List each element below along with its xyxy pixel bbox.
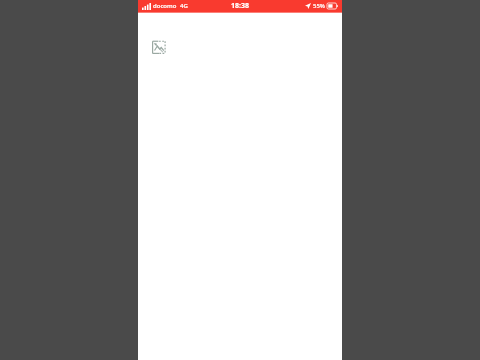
staticText: docomo [153,2,177,10]
button[interactable]: Image failed to load [151,39,167,55]
staticText: 55% [313,2,325,10]
staticText: 18:38 [231,1,249,11]
staticText: 4G [180,2,188,10]
